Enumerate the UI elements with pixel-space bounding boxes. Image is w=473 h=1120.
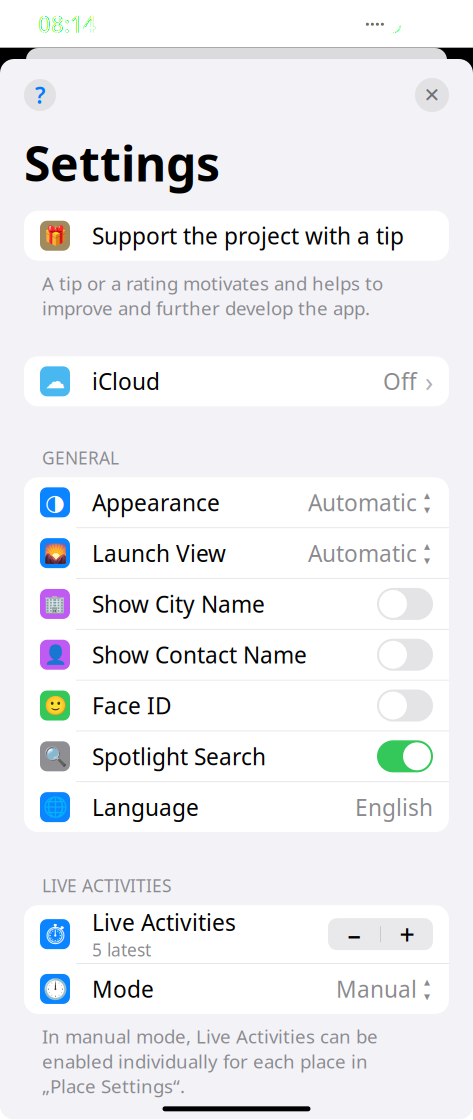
button[interactable]: 🕛 (24, 964, 449, 1014)
staticText: 08:14 (38, 9, 96, 39)
button[interactable]: ◑ (24, 477, 449, 527)
staticText: 🏢 (44, 594, 66, 614)
staticText: Launch View (92, 538, 226, 568)
staticText: ▴ (424, 975, 430, 988)
staticText: Face ID (92, 690, 172, 721)
staticText: ⏱ (42, 923, 67, 946)
staticText: + (399, 916, 414, 952)
staticText: ···· (365, 12, 385, 35)
staticText: ▾ (424, 554, 430, 567)
button[interactable]: Decrease (328, 918, 380, 950)
staticText: 👤 (43, 644, 66, 665)
staticText: Appearance (92, 487, 220, 517)
staticText: ◑ (45, 489, 65, 515)
staticText: 5 latest (92, 938, 151, 961)
staticText: – (347, 916, 360, 952)
staticText: GENERAL (42, 446, 119, 469)
staticText: ? (35, 80, 45, 110)
staticText: 🙂 (43, 695, 66, 716)
staticText: ☁ (45, 370, 65, 393)
staticText: Live Activities (92, 907, 236, 937)
staticText: A tip or a rating motivates and helps to… (42, 271, 383, 320)
staticText: English (355, 792, 433, 822)
button[interactable]: 🌐 (24, 782, 449, 832)
button[interactable]: Close (415, 78, 449, 112)
button[interactable]: 🔍 (24, 731, 449, 781)
button[interactable]: 🎁 (24, 211, 449, 261)
button[interactable]: Help (24, 79, 56, 111)
staticText: In manual mode, Live Activities can be e… (42, 1024, 378, 1098)
staticText: ▾ (424, 989, 430, 1003)
staticText: 🌄 (43, 542, 66, 564)
staticText: Show Contact Name (92, 640, 307, 670)
button[interactable]: ☁ (24, 356, 449, 406)
button[interactable]: Increase (381, 918, 433, 950)
staticText: Manual (336, 974, 417, 1004)
staticText: Spotlight Search (92, 741, 266, 771)
staticText: Settings (24, 131, 220, 195)
staticText: ▴ (424, 488, 430, 502)
button[interactable]: 🏢 (24, 579, 449, 629)
staticText: iCloud (92, 366, 160, 396)
staticText: › (425, 364, 433, 399)
staticText: LIVE ACTIVITIES (42, 874, 172, 897)
staticText: Automatic (308, 538, 417, 568)
staticText: Automatic (308, 487, 417, 517)
staticText: ▾ (424, 503, 430, 516)
staticText: 🔍 (43, 746, 66, 767)
staticText: 🌐 (42, 796, 67, 819)
staticText: ✕ (423, 84, 440, 106)
button[interactable]: 🌄 (24, 528, 449, 578)
staticText: Show City Name (92, 589, 265, 619)
staticText: Off (383, 366, 417, 396)
staticText: ◞ (393, 13, 401, 35)
staticText: Support the project with a tip (92, 221, 404, 251)
staticText: 🕛 (42, 977, 67, 1000)
staticText: Language (92, 792, 199, 822)
staticText: 🎁 (43, 225, 66, 246)
button[interactable]: 👤 (24, 630, 449, 680)
staticText: ▴ (424, 539, 430, 553)
button[interactable]: 🙂 (24, 680, 449, 730)
staticText: Mode (92, 974, 154, 1004)
